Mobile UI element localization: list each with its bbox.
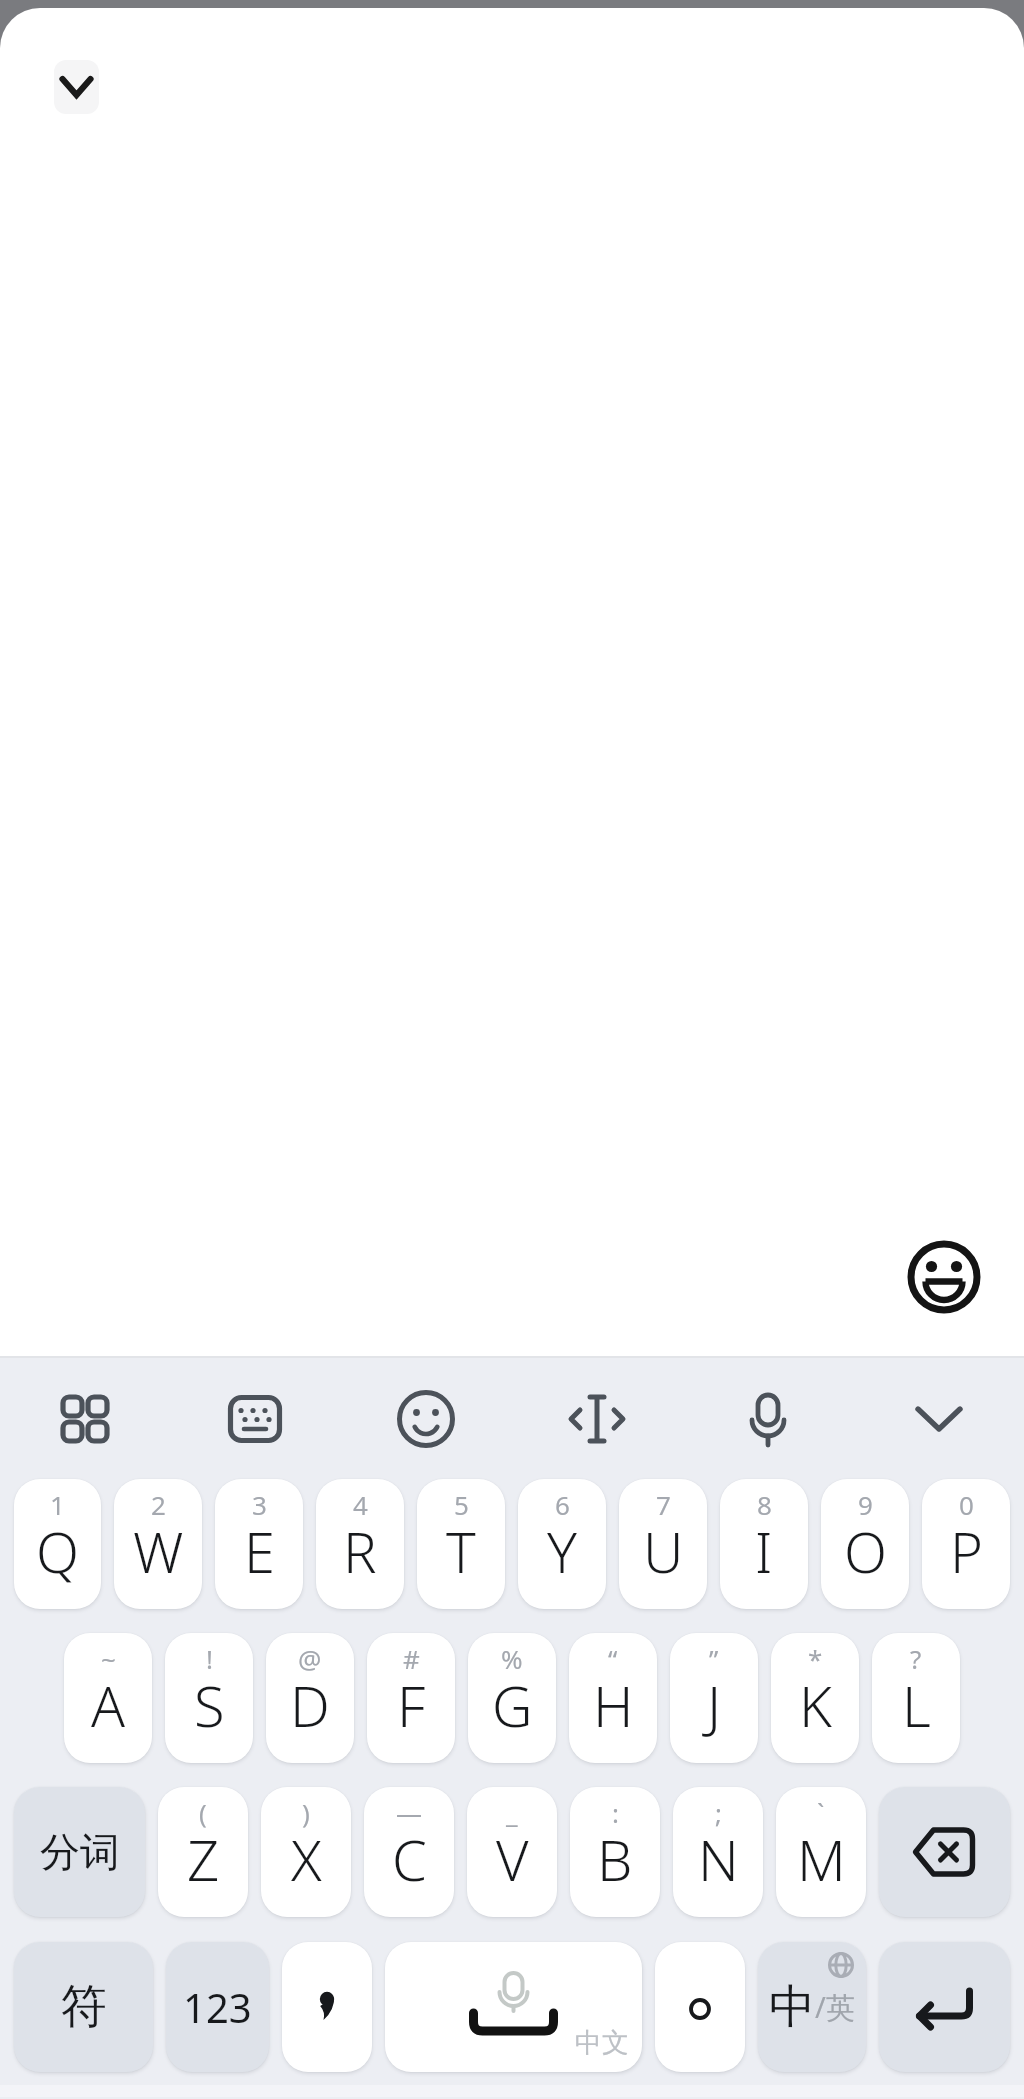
staticText: M xyxy=(797,1821,846,1897)
button[interactable] xyxy=(511,1358,682,1479)
staticText: @ xyxy=(298,1641,322,1676)
button[interactable]: 6 xyxy=(518,1479,606,1609)
staticText: 2 xyxy=(151,1487,166,1522)
staticText: 7 xyxy=(656,1487,671,1522)
button[interactable]: ( xyxy=(158,1787,248,1917)
staticText: N xyxy=(698,1821,739,1897)
staticText: 5 xyxy=(454,1487,469,1522)
staticText: : xyxy=(612,1795,619,1830)
button[interactable]: 0 xyxy=(922,1479,1010,1609)
button[interactable] xyxy=(655,1942,745,2072)
staticText: X xyxy=(291,1821,322,1897)
staticText: E xyxy=(244,1513,275,1589)
button[interactable]: 2 xyxy=(114,1479,202,1609)
button[interactable] xyxy=(54,60,99,114)
button[interactable]: _ xyxy=(467,1787,557,1917)
button[interactable]: 中文 xyxy=(385,1942,642,2072)
staticText: ( xyxy=(199,1795,207,1830)
staticText: ~ xyxy=(101,1641,116,1676)
staticText: A xyxy=(91,1667,126,1743)
button[interactable] xyxy=(340,1358,511,1479)
button[interactable]: “ xyxy=(569,1633,657,1763)
button[interactable] xyxy=(282,1942,372,2072)
button[interactable]: 9 xyxy=(821,1479,909,1609)
staticText: U xyxy=(643,1513,684,1589)
button[interactable]: # xyxy=(367,1633,455,1763)
staticText: ` xyxy=(817,1795,825,1830)
staticText: ; xyxy=(715,1795,722,1830)
button[interactable] xyxy=(682,1358,853,1479)
staticText: Y xyxy=(547,1513,577,1589)
button[interactable]: ! xyxy=(165,1633,253,1763)
staticText: O xyxy=(844,1513,887,1589)
staticText: ! xyxy=(206,1641,213,1676)
staticText: Q xyxy=(36,1513,79,1589)
staticText: 9 xyxy=(858,1487,873,1522)
staticText: L xyxy=(902,1667,931,1743)
staticText: 中 xyxy=(769,1978,815,2036)
staticText: /英 xyxy=(815,1987,855,2027)
staticText: H xyxy=(593,1667,634,1743)
staticText: 0 xyxy=(959,1487,974,1522)
staticText: 3 xyxy=(252,1487,267,1522)
staticText: % xyxy=(501,1641,523,1676)
staticText: 123 xyxy=(183,1980,252,2034)
button[interactable]: 1 xyxy=(14,1479,101,1609)
staticText: K xyxy=(799,1667,832,1743)
button[interactable]: 3 xyxy=(215,1479,303,1609)
staticText: ) xyxy=(302,1795,310,1830)
button[interactable]: % xyxy=(468,1633,556,1763)
staticText: # xyxy=(403,1641,420,1676)
staticText: 6 xyxy=(555,1487,570,1522)
staticText: P xyxy=(950,1513,983,1589)
staticText: J xyxy=(707,1667,722,1743)
staticText: G xyxy=(492,1667,533,1743)
button[interactable]: ~ xyxy=(64,1633,152,1763)
button[interactable]: 分词 xyxy=(14,1787,145,1917)
button[interactable]: : xyxy=(570,1787,660,1917)
staticText: Z xyxy=(187,1821,220,1897)
button[interactable]: * xyxy=(771,1633,859,1763)
button[interactable]: — xyxy=(364,1787,454,1917)
staticText: 中文 xyxy=(575,2026,629,2060)
button[interactable] xyxy=(853,1358,1024,1479)
staticText: W xyxy=(133,1513,184,1589)
button[interactable] xyxy=(904,1237,984,1317)
button[interactable]: 123 xyxy=(166,1942,269,2072)
staticText: 4 xyxy=(353,1487,368,1522)
staticText: S xyxy=(194,1667,225,1743)
button[interactable]: 8 xyxy=(720,1479,808,1609)
staticText: ? xyxy=(910,1641,922,1676)
button[interactable]: 7 xyxy=(619,1479,707,1609)
staticText: I xyxy=(755,1513,773,1589)
staticText: V xyxy=(496,1821,529,1897)
staticText: C xyxy=(392,1821,427,1897)
staticText: R xyxy=(343,1513,377,1589)
button[interactable]: 4 xyxy=(316,1479,404,1609)
staticText: D xyxy=(290,1667,330,1743)
staticText: 分词 xyxy=(40,1827,120,1877)
staticText: * xyxy=(808,1641,823,1676)
button[interactable]: ? xyxy=(872,1633,960,1763)
staticText: 1 xyxy=(50,1487,65,1522)
button[interactable]: ; xyxy=(673,1787,763,1917)
button[interactable] xyxy=(170,1358,340,1479)
button[interactable] xyxy=(0,1358,170,1479)
staticText: — xyxy=(396,1795,423,1830)
button[interactable]: 5 xyxy=(417,1479,505,1609)
staticText: “ xyxy=(608,1641,618,1676)
button[interactable] xyxy=(879,1787,1010,1917)
button[interactable]: 中 xyxy=(758,1942,866,2072)
button[interactable]: 符 xyxy=(14,1942,153,2072)
button[interactable] xyxy=(879,1942,1010,2072)
button[interactable]: ` xyxy=(776,1787,866,1917)
staticText: 符 xyxy=(61,1978,107,2036)
button[interactable]: ” xyxy=(670,1633,758,1763)
staticText: 8 xyxy=(757,1487,772,1522)
staticText: B xyxy=(597,1821,633,1897)
button[interactable]: @ xyxy=(266,1633,354,1763)
button[interactable]: ) xyxy=(261,1787,351,1917)
staticText: T xyxy=(446,1513,476,1589)
staticText: _ xyxy=(506,1795,518,1830)
staticText: F xyxy=(397,1667,426,1743)
